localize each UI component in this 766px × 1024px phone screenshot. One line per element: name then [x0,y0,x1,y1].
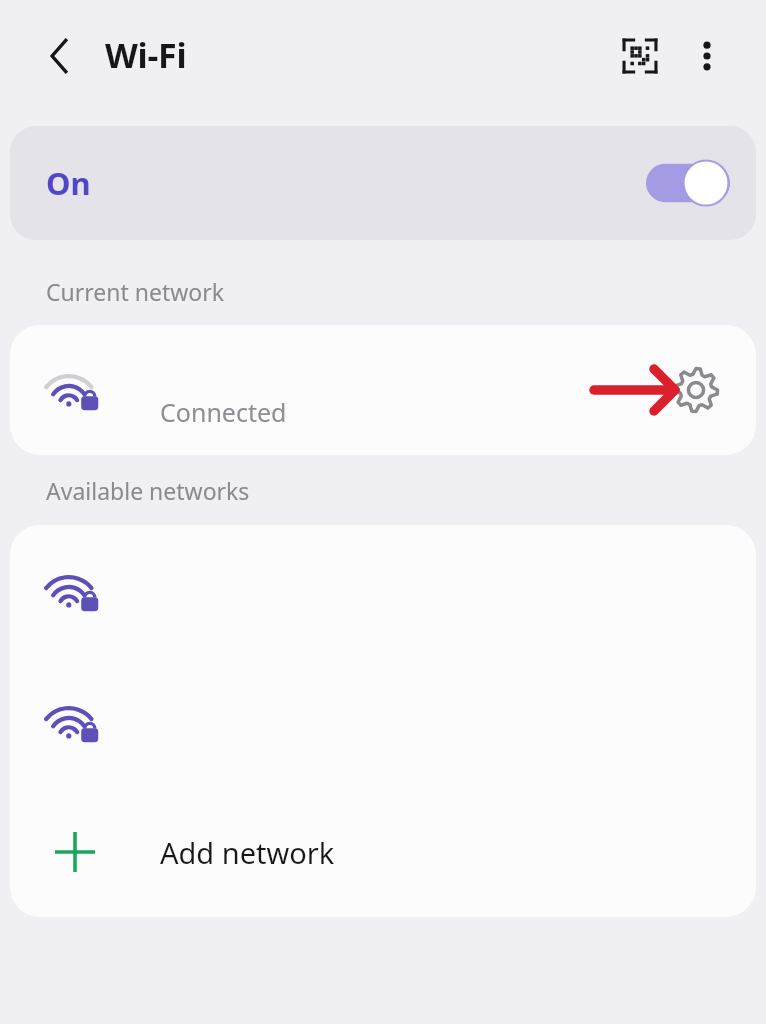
staticText: On [46,162,91,204]
button[interactable]: Wi-Fi network [10,525,756,656]
button[interactable]: Back [34,30,86,82]
button[interactable]: More options [679,28,735,84]
button[interactable]: Wi-Fi network [10,656,756,787]
button[interactable]: On [10,126,756,240]
staticText: Wi-Fi [105,32,187,78]
staticText: Current network [46,276,225,307]
staticText: Connected [160,395,287,429]
button[interactable]: Scan QR code [612,28,668,84]
button[interactable]: Connected [10,325,756,455]
staticText: Add network [160,833,335,872]
button[interactable]: Wi-Fi on [646,159,730,207]
button[interactable]: Network settings [668,362,724,418]
staticText: Available networks [46,475,250,506]
button[interactable]: Add network [10,787,756,917]
